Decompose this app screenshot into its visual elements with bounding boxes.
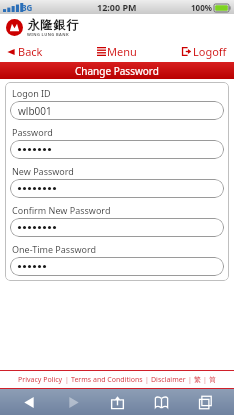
- staticText: Logoff: [193, 44, 227, 59]
- staticText: WING LUNG BANK: [27, 32, 69, 37]
- staticText: 12:00 PM: [97, 1, 137, 13]
- button[interactable]: Forward: [58, 390, 88, 414]
- button[interactable]: Logoff: [180, 42, 229, 61]
- staticText: |: [145, 375, 149, 385]
- staticText: New Password: [12, 165, 74, 177]
- button[interactable]: [10, 218, 224, 237]
- button[interactable]: Terms and Conditions: [70, 373, 144, 387]
- staticText: Privacy Policy: [18, 375, 63, 385]
- staticText: wlb001: [18, 104, 52, 118]
- staticText: 永隆銀行: [27, 17, 79, 32]
- staticText: 3G: [22, 2, 33, 13]
- button[interactable]: Disclaimer: [150, 373, 187, 387]
- staticText: Disclaimer: [151, 375, 186, 385]
- staticText: |: [65, 375, 69, 385]
- button[interactable]: [10, 140, 224, 159]
- staticText: Menu: [107, 44, 137, 59]
- button[interactable]: Back: [5, 42, 45, 61]
- button[interactable]: wlb001: [10, 101, 224, 120]
- staticText: 100%: [191, 2, 212, 13]
- staticText: Back: [18, 44, 43, 59]
- staticText: Change Password: [75, 64, 159, 78]
- button[interactable]: Privacy Policy: [17, 373, 64, 387]
- button[interactable]: 简: [208, 373, 217, 386]
- button[interactable]: Share: [102, 390, 132, 414]
- button[interactable]: Back: [14, 390, 44, 414]
- staticText: Password: [12, 126, 53, 138]
- staticText: Logon ID: [12, 87, 51, 99]
- staticText: One-Time Password: [12, 243, 97, 255]
- staticText: 简: [209, 375, 216, 384]
- staticText: 繁: [194, 375, 201, 384]
- button[interactable]: [10, 257, 224, 276]
- button[interactable]: Tabs: [190, 390, 220, 414]
- button[interactable]: Menu: [95, 42, 139, 61]
- staticText: |: [203, 375, 207, 385]
- staticText: |: [188, 375, 192, 385]
- staticText: Terms and Conditions: [71, 375, 143, 385]
- button[interactable]: [10, 179, 224, 198]
- button[interactable]: 繁: [193, 373, 202, 386]
- staticText: Confirm New Password: [12, 204, 111, 216]
- button[interactable]: Bookmarks: [146, 390, 176, 414]
